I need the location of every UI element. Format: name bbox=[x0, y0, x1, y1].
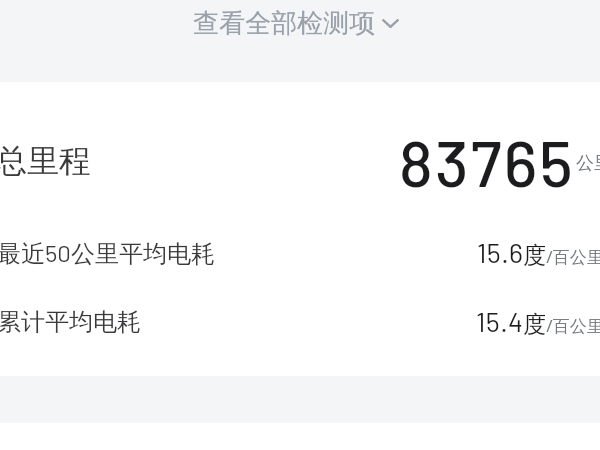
staticText: 83765 bbox=[399, 123, 575, 200]
staticText: 总里程 bbox=[0, 141, 91, 181]
staticText: 最近50公里平均电耗 bbox=[0, 238, 215, 269]
staticText: 15.4度/百公里 bbox=[476, 305, 600, 339]
other: 展开全部检测项 bbox=[382, 19, 399, 28]
staticText: 查看全部检测项 bbox=[193, 7, 375, 40]
button[interactable]: 累计平均电耗 bbox=[0, 288, 600, 356]
staticText: 公里 bbox=[576, 152, 600, 175]
staticText: 15.6度/百公里 bbox=[477, 236, 600, 270]
button[interactable]: 总里程 bbox=[0, 96, 600, 218]
button[interactable]: 最近50公里平均电耗 bbox=[0, 219, 600, 287]
button[interactable]: 查看全部检测项 bbox=[0, 0, 600, 82]
staticText: 累计平均电耗 bbox=[0, 307, 141, 337]
